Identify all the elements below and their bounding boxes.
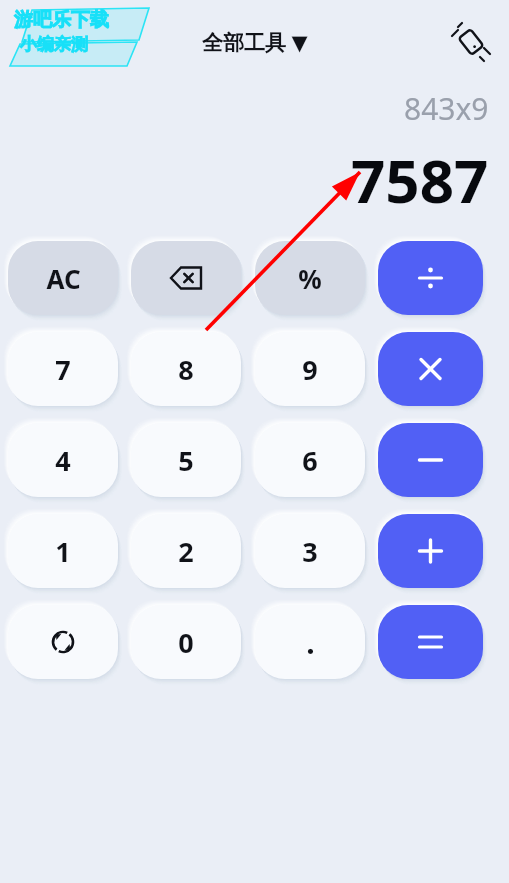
button[interactable]: . (255, 605, 365, 679)
button[interactable]: 5 (131, 423, 241, 497)
button[interactable]: Equals (378, 605, 483, 679)
staticText: 游吧乐下载 (14, 8, 109, 32)
staticText: AC (46, 261, 81, 296)
staticText: 4 (55, 442, 71, 479)
staticText: 3 (302, 533, 318, 570)
staticText: % (298, 261, 322, 296)
button[interactable]: Unit converter (8, 605, 118, 679)
button[interactable]: 0 (131, 605, 241, 679)
button[interactable]: 2 (131, 514, 241, 588)
button[interactable]: 3 (255, 514, 365, 588)
button[interactable]: Backspace (131, 241, 241, 315)
staticText: 9 (302, 351, 318, 388)
button[interactable]: AC (8, 241, 118, 315)
button[interactable]: Add (378, 514, 483, 588)
staticText: 1 (55, 533, 71, 570)
button[interactable]: 4 (8, 423, 118, 497)
staticText: 843x9 (404, 88, 489, 129)
staticText: 8 (178, 351, 194, 388)
button[interactable]: 8 (131, 332, 241, 406)
button[interactable]: 全部工具 ▼ (202, 28, 308, 57)
button[interactable]: Multiply (378, 332, 483, 406)
button[interactable]: 9 (255, 332, 365, 406)
button[interactable]: Subtract (378, 423, 483, 497)
staticText: 6 (302, 442, 318, 479)
staticText: 7 (55, 351, 71, 388)
button[interactable]: 7 (8, 332, 118, 406)
button[interactable]: 6 (255, 423, 365, 497)
staticText: . (306, 622, 315, 663)
button[interactable]: Rotate screen (447, 18, 495, 66)
staticText: 0 (178, 624, 194, 661)
staticText: 7587 (351, 139, 489, 221)
button[interactable]: % (255, 241, 365, 315)
button[interactable]: 1 (8, 514, 118, 588)
button[interactable]: Divide (378, 241, 483, 315)
staticText: 2 (178, 533, 194, 570)
staticText: 5 (178, 442, 194, 479)
staticText: 小编亲测 (20, 34, 88, 55)
